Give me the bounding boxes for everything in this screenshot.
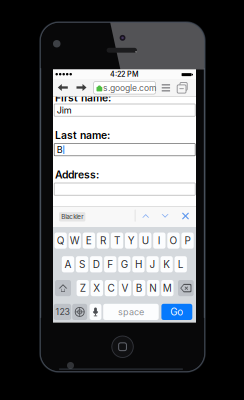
- button[interactable]: Y: [125, 232, 137, 249]
- button[interactable]: O: [167, 232, 180, 249]
- staticText: Last name:: [55, 129, 110, 142]
- button[interactable]: Delete: [178, 280, 194, 296]
- staticText: E: [86, 235, 92, 247]
- staticText: R: [100, 235, 106, 247]
- button[interactable]: M: [161, 280, 173, 296]
- button[interactable]: Back: [56, 81, 70, 93]
- button[interactable]: A: [62, 256, 74, 272]
- staticText: M: [163, 282, 172, 294]
- staticText: U: [142, 235, 149, 247]
- staticText: Z: [80, 282, 86, 294]
- staticText: Blackler: [61, 213, 83, 220]
- button[interactable]: Dictation: [90, 304, 101, 320]
- staticText: P: [184, 235, 190, 247]
- staticText: O: [169, 235, 177, 247]
- staticText: I: [158, 235, 161, 247]
- button[interactable]: L: [175, 256, 187, 272]
- staticText: S: [79, 258, 85, 270]
- button[interactable]: Shift: [55, 280, 71, 296]
- staticText: F: [107, 258, 113, 270]
- staticText: space: [118, 306, 144, 317]
- staticText: V: [122, 282, 129, 294]
- button[interactable]: F: [104, 256, 116, 272]
- button[interactable]: Blackler: [59, 212, 85, 221]
- button[interactable]: I: [153, 232, 165, 249]
- button[interactable]: B: [133, 280, 145, 296]
- button[interactable]: R: [97, 232, 109, 249]
- button[interactable]: S: [76, 256, 88, 272]
- button[interactable]: Q: [54, 232, 67, 249]
- button[interactable]: Tabs: [175, 82, 189, 94]
- button[interactable]: Bookmarks: [159, 82, 172, 94]
- staticText: Y: [128, 235, 135, 247]
- button[interactable]: s.google.com: [94, 82, 155, 94]
- staticText: Q: [57, 235, 65, 247]
- button[interactable]: C: [105, 280, 117, 296]
- staticText: N: [149, 282, 157, 294]
- button[interactable]: Next field: [159, 210, 172, 221]
- button[interactable]: X: [91, 280, 103, 296]
- staticText: B: [57, 144, 63, 155]
- staticText: H: [135, 258, 142, 270]
- button[interactable]: V: [119, 280, 131, 296]
- staticText: 4:22 PM: [110, 70, 139, 78]
- button[interactable]: E: [83, 232, 95, 249]
- button[interactable]: J: [146, 256, 159, 272]
- staticText: 123: [55, 307, 69, 317]
- button[interactable]: Next keyboard: [72, 304, 87, 320]
- staticText: Address:: [55, 168, 99, 181]
- button[interactable]: D: [90, 256, 102, 272]
- button[interactable]: T: [111, 232, 123, 249]
- button[interactable]: Previous field: [139, 210, 152, 221]
- staticText: G: [121, 258, 128, 270]
- staticText: s.google.com: [103, 83, 156, 93]
- staticText: B: [136, 282, 143, 294]
- button[interactable]: W: [69, 232, 81, 249]
- button[interactable]: G: [118, 256, 130, 272]
- staticText: W: [70, 235, 80, 247]
- staticText: C: [107, 282, 114, 294]
- button[interactable]: Forward: [74, 81, 88, 93]
- staticText: First name:: [55, 91, 111, 104]
- button[interactable]: U: [139, 232, 151, 249]
- staticText: D: [93, 258, 100, 270]
- button[interactable]: H: [132, 256, 145, 272]
- button[interactable]: N: [147, 280, 159, 296]
- staticText: X: [93, 282, 100, 294]
- staticText: A: [64, 258, 71, 270]
- button[interactable]: space: [103, 304, 159, 320]
- button[interactable]: Z: [77, 280, 89, 296]
- button[interactable]: Done: [179, 209, 192, 222]
- button[interactable]: K: [160, 256, 173, 272]
- staticText: Jim: [57, 105, 72, 116]
- button[interactable]: Go: [161, 304, 192, 320]
- staticText: T: [114, 235, 120, 247]
- button[interactable]: P: [181, 232, 194, 249]
- staticText: L: [178, 258, 184, 270]
- staticText: J: [150, 258, 156, 270]
- staticText: K: [163, 258, 170, 270]
- staticText: Go: [170, 306, 183, 318]
- button[interactable]: 123: [54, 304, 71, 320]
